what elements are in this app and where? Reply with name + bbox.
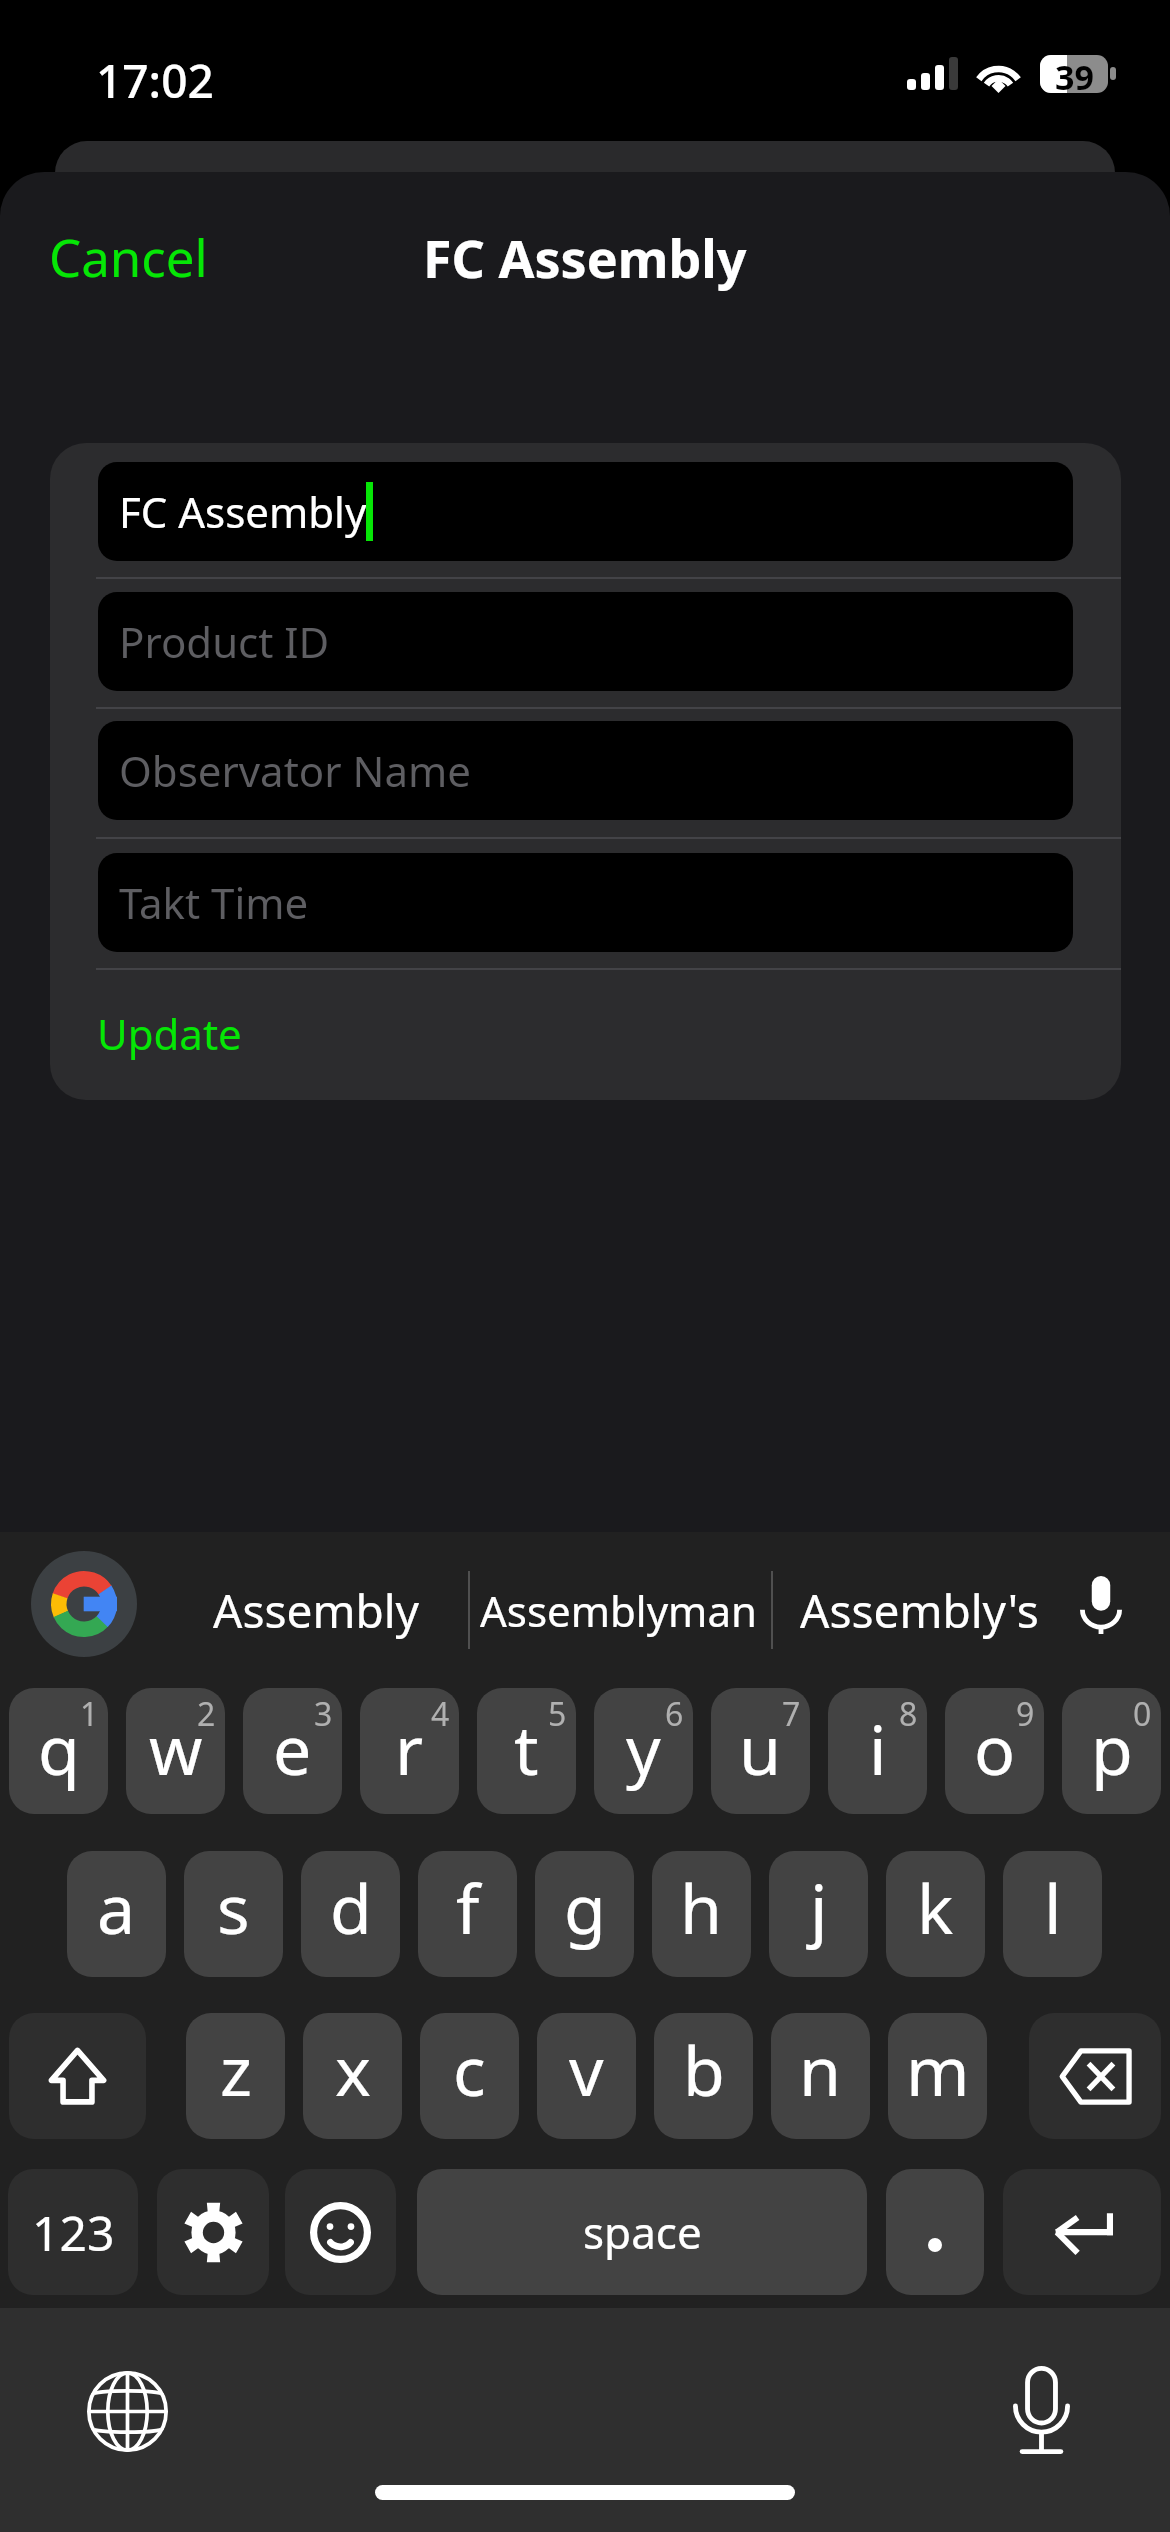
staticText: i <box>869 1702 887 1795</box>
button[interactable]: Cancel <box>28 210 228 302</box>
staticText: space <box>583 2202 702 2262</box>
button[interactable]: p <box>1062 1688 1161 1814</box>
staticText: o <box>974 1702 1016 1795</box>
button[interactable]: h <box>652 1851 751 1977</box>
button[interactable]: Keyboard settings <box>157 2169 269 2295</box>
staticText: 8 <box>899 1692 918 1736</box>
button[interactable]: Assembly's <box>766 1532 1072 1688</box>
staticText: d <box>330 1861 372 1954</box>
button[interactable]: Takt Time <box>98 853 1073 952</box>
button[interactable]: g <box>535 1851 634 1977</box>
button[interactable]: u <box>711 1688 810 1814</box>
staticText: FC Assembly <box>423 222 747 293</box>
staticText: Assemblyman <box>480 1582 757 1639</box>
button[interactable]: Period <box>886 2169 984 2295</box>
staticText: k <box>917 1861 954 1954</box>
staticText: 6 <box>665 1692 684 1736</box>
staticText: f <box>456 1861 480 1954</box>
button[interactable]: f <box>418 1851 517 1977</box>
staticText: 0 <box>1133 1692 1152 1736</box>
button[interactable]: w <box>126 1688 225 1814</box>
button[interactable]: FC Assembly <box>98 462 1073 561</box>
button[interactable]: Emoji <box>285 2169 396 2295</box>
staticText: h <box>680 1861 723 1954</box>
staticText: z <box>220 2023 252 2116</box>
staticText: 3 <box>314 1692 333 1736</box>
staticText: 17:02 <box>96 49 214 112</box>
staticText: m <box>906 2023 970 2116</box>
staticText: 9 <box>1016 1692 1035 1736</box>
button[interactable]: a <box>67 1851 166 1977</box>
button[interactable]: r <box>360 1688 459 1814</box>
button[interactable]: o <box>945 1688 1044 1814</box>
button[interactable]: v <box>537 2013 636 2139</box>
button[interactable]: Enter <box>1003 2169 1161 2295</box>
button[interactable]: j <box>769 1851 868 1977</box>
button[interactable]: x <box>303 2013 402 2139</box>
staticText: b <box>683 2023 725 2116</box>
staticText: Takt Time <box>119 874 309 931</box>
staticText: g <box>564 1861 606 1954</box>
button[interactable]: Voice typing <box>1013 2366 1070 2454</box>
staticText: r <box>395 1702 424 1795</box>
staticText: t <box>514 1702 539 1795</box>
button[interactable]: z <box>186 2013 285 2139</box>
staticText: FC Assembly <box>119 483 367 540</box>
staticText: w <box>149 1702 203 1795</box>
staticText: Assembly's <box>800 1579 1039 1642</box>
button[interactable]: l <box>1003 1851 1102 1977</box>
staticText: 39 <box>1055 54 1094 92</box>
button[interactable]: Product ID <box>98 592 1073 691</box>
staticText: l <box>1044 1861 1062 1954</box>
staticText: n <box>799 2023 842 2116</box>
button[interactable]: Observator Name <box>98 721 1073 820</box>
button[interactable]: e <box>243 1688 342 1814</box>
staticText: Product ID <box>119 613 330 670</box>
button[interactable]: Update <box>50 970 1121 1100</box>
staticText: v <box>569 2023 604 2116</box>
button[interactable]: Assemblyman <box>452 1532 785 1688</box>
staticText: 7 <box>782 1692 801 1736</box>
button[interactable]: q <box>9 1688 108 1814</box>
staticText: s <box>217 1861 250 1954</box>
staticText: Cancel <box>49 222 208 291</box>
staticText: 2 <box>197 1692 216 1736</box>
button[interactable]: k <box>886 1851 985 1977</box>
staticText: a <box>97 1861 136 1954</box>
staticText: 1 <box>80 1692 99 1736</box>
staticText: u <box>739 1702 782 1795</box>
button[interactable]: Change keyboard language <box>87 2371 168 2452</box>
staticText: y <box>626 1702 661 1795</box>
button[interactable]: m <box>888 2013 987 2139</box>
button[interactable]: s <box>184 1851 283 1977</box>
button[interactable]: Voice input <box>1080 1576 1122 1634</box>
staticText: q <box>38 1702 80 1795</box>
button[interactable]: Shift <box>9 2013 146 2139</box>
staticText: Observator Name <box>119 742 471 799</box>
button[interactable]: 123 <box>8 2169 138 2295</box>
button[interactable]: d <box>301 1851 400 1977</box>
staticText: Update <box>97 1005 242 1062</box>
staticText: j <box>810 1861 828 1954</box>
button[interactable]: Assembly <box>182 1532 451 1688</box>
button[interactable]: n <box>771 2013 870 2139</box>
button[interactable]: space <box>417 2169 867 2295</box>
button[interactable]: c <box>420 2013 519 2139</box>
staticText: 123 <box>32 2200 115 2265</box>
staticText: e <box>273 1702 312 1795</box>
button[interactable]: Backspace <box>1029 2013 1161 2139</box>
button[interactable]: Google <box>31 1551 137 1657</box>
staticText: 4 <box>431 1692 450 1736</box>
staticText: c <box>453 2023 486 2116</box>
button[interactable]: i <box>828 1688 927 1814</box>
staticText: p <box>1091 1702 1133 1795</box>
staticText: 5 <box>548 1692 567 1736</box>
button[interactable]: y <box>594 1688 693 1814</box>
staticText: Assembly <box>213 1579 420 1642</box>
button[interactable]: b <box>654 2013 753 2139</box>
button[interactable]: t <box>477 1688 576 1814</box>
staticText: x <box>335 2023 371 2116</box>
